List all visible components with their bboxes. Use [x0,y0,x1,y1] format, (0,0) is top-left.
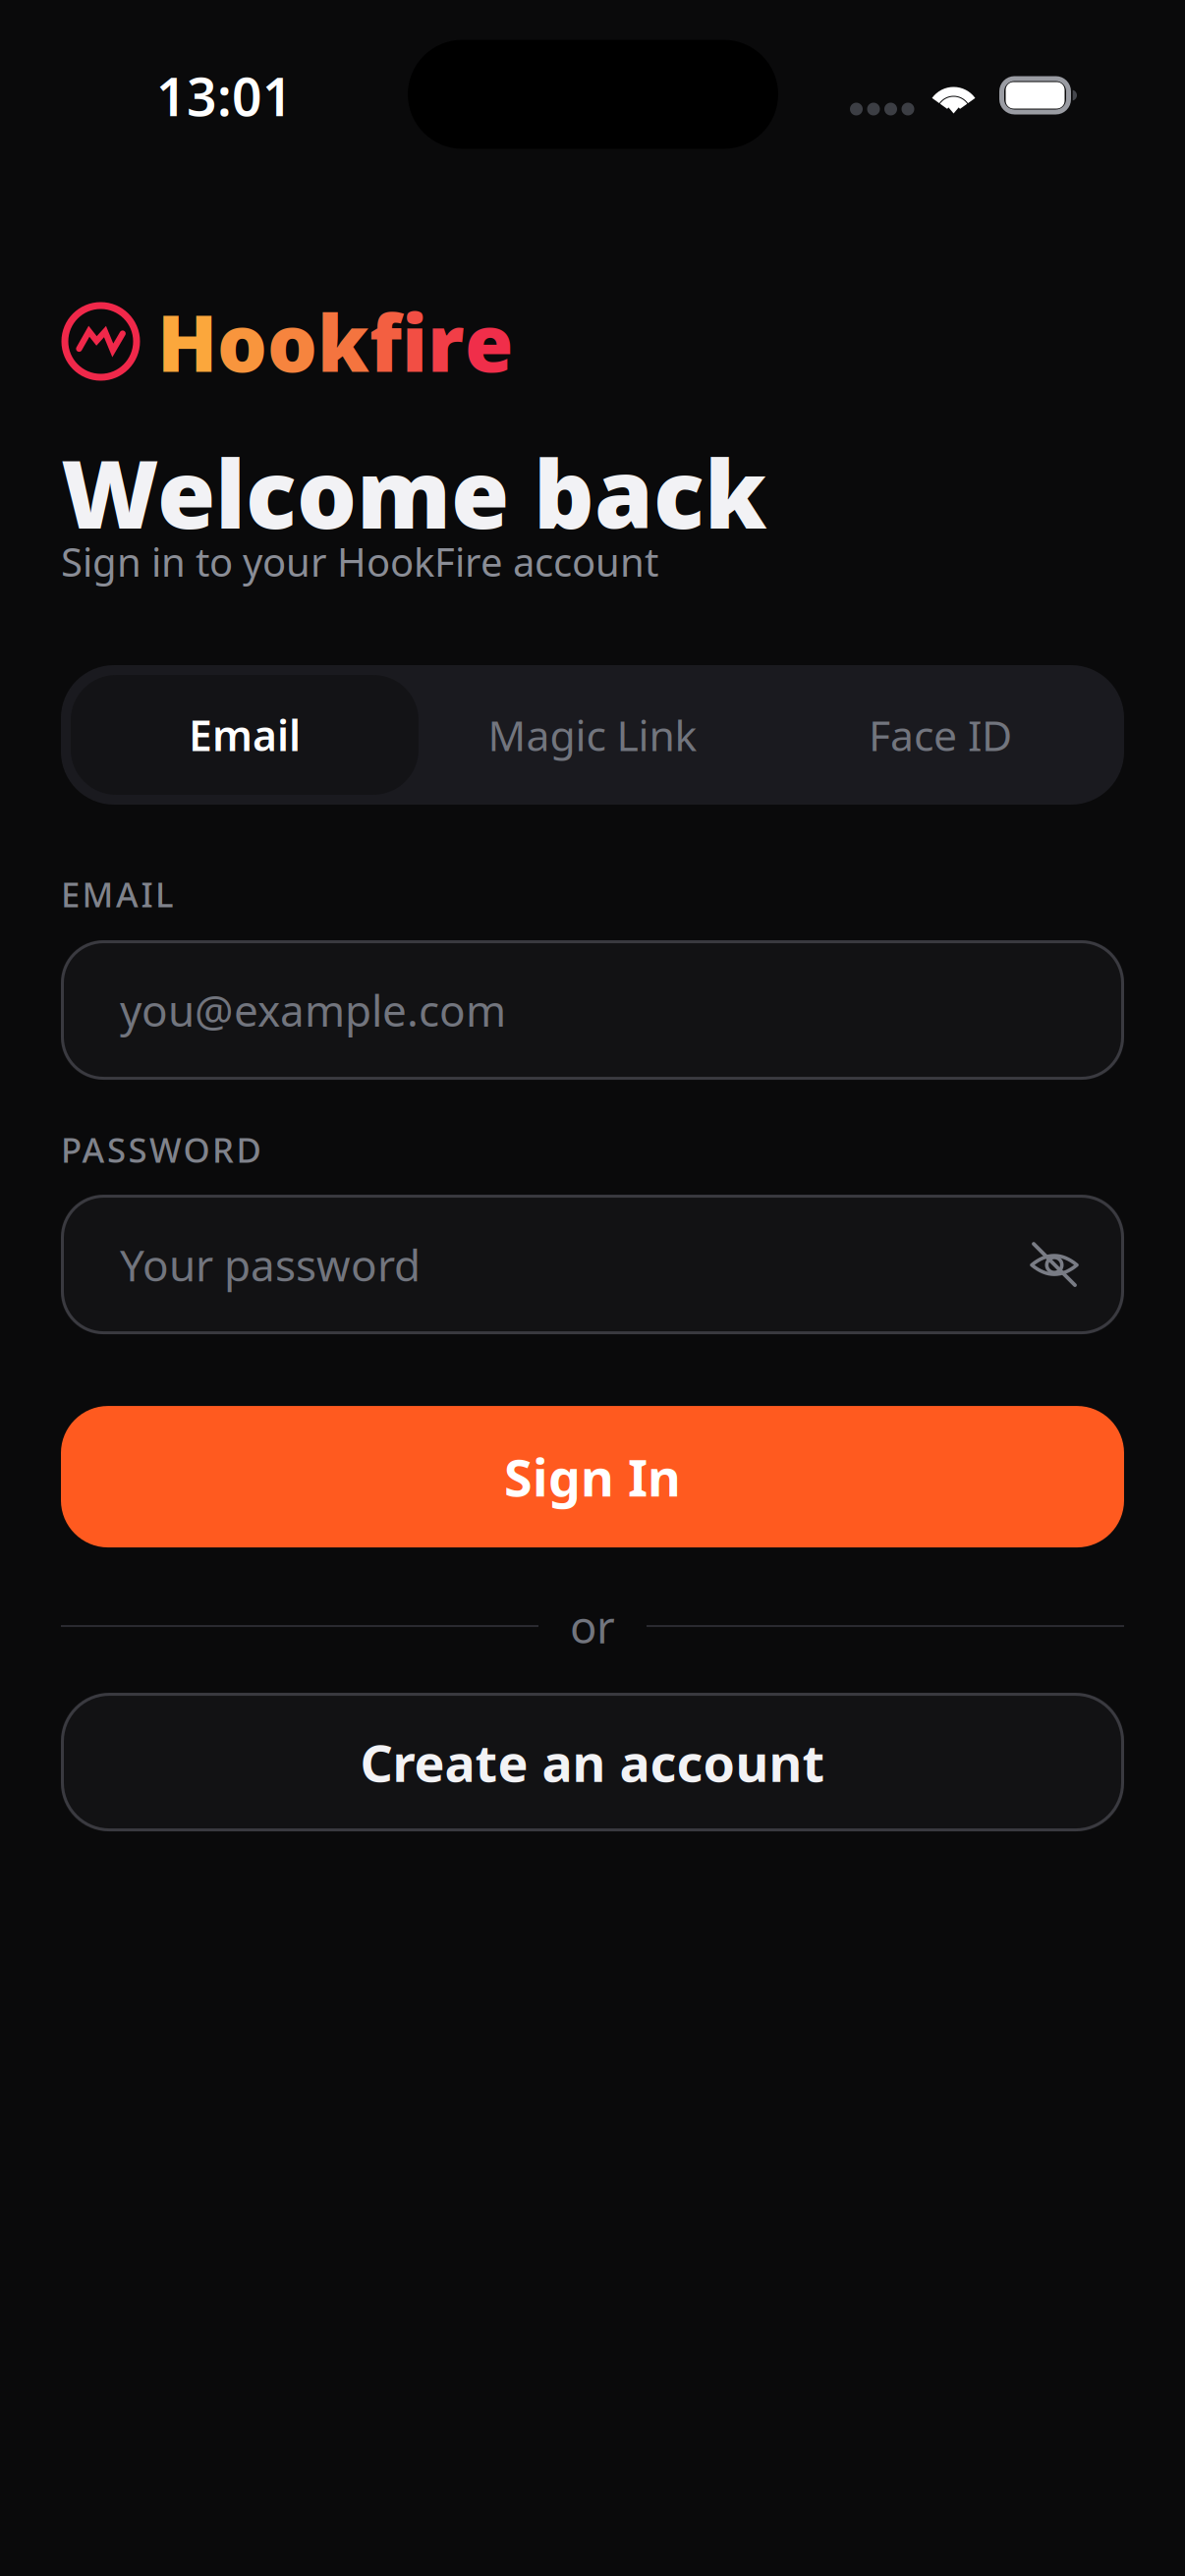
staticText: o [267,289,317,394]
button[interactable]: Email [71,675,419,795]
button[interactable]: Sign In [61,1406,1124,1547]
staticText: f [369,289,402,394]
staticText: Sign in to your HookFire account [61,535,658,588]
staticText: Your password [120,1236,421,1293]
staticText: or [570,1596,615,1656]
staticText: Email [189,707,301,763]
staticText: 13:01 [156,61,293,131]
button[interactable]: Show password [1029,1239,1080,1290]
staticText: Welcome back [61,429,766,555]
staticText: i [402,289,427,394]
staticText: o [217,289,267,394]
staticText: Sign In [504,1443,681,1511]
button[interactable]: Magic Link [419,675,766,795]
staticText: H [157,289,217,394]
staticText: PASSWORD [61,1127,261,1172]
staticText: k [317,289,369,394]
staticText: r [427,289,465,394]
button[interactable]: Face ID [766,675,1114,795]
staticText: Create an account [360,1728,825,1796]
staticText: Face ID [869,707,1012,763]
staticText: Magic Link [488,707,697,763]
staticText: e [465,289,513,394]
button[interactable]: Create an account [61,1693,1124,1831]
staticText: you@example.com [120,981,506,1039]
staticText: EMAIL [61,871,174,917]
